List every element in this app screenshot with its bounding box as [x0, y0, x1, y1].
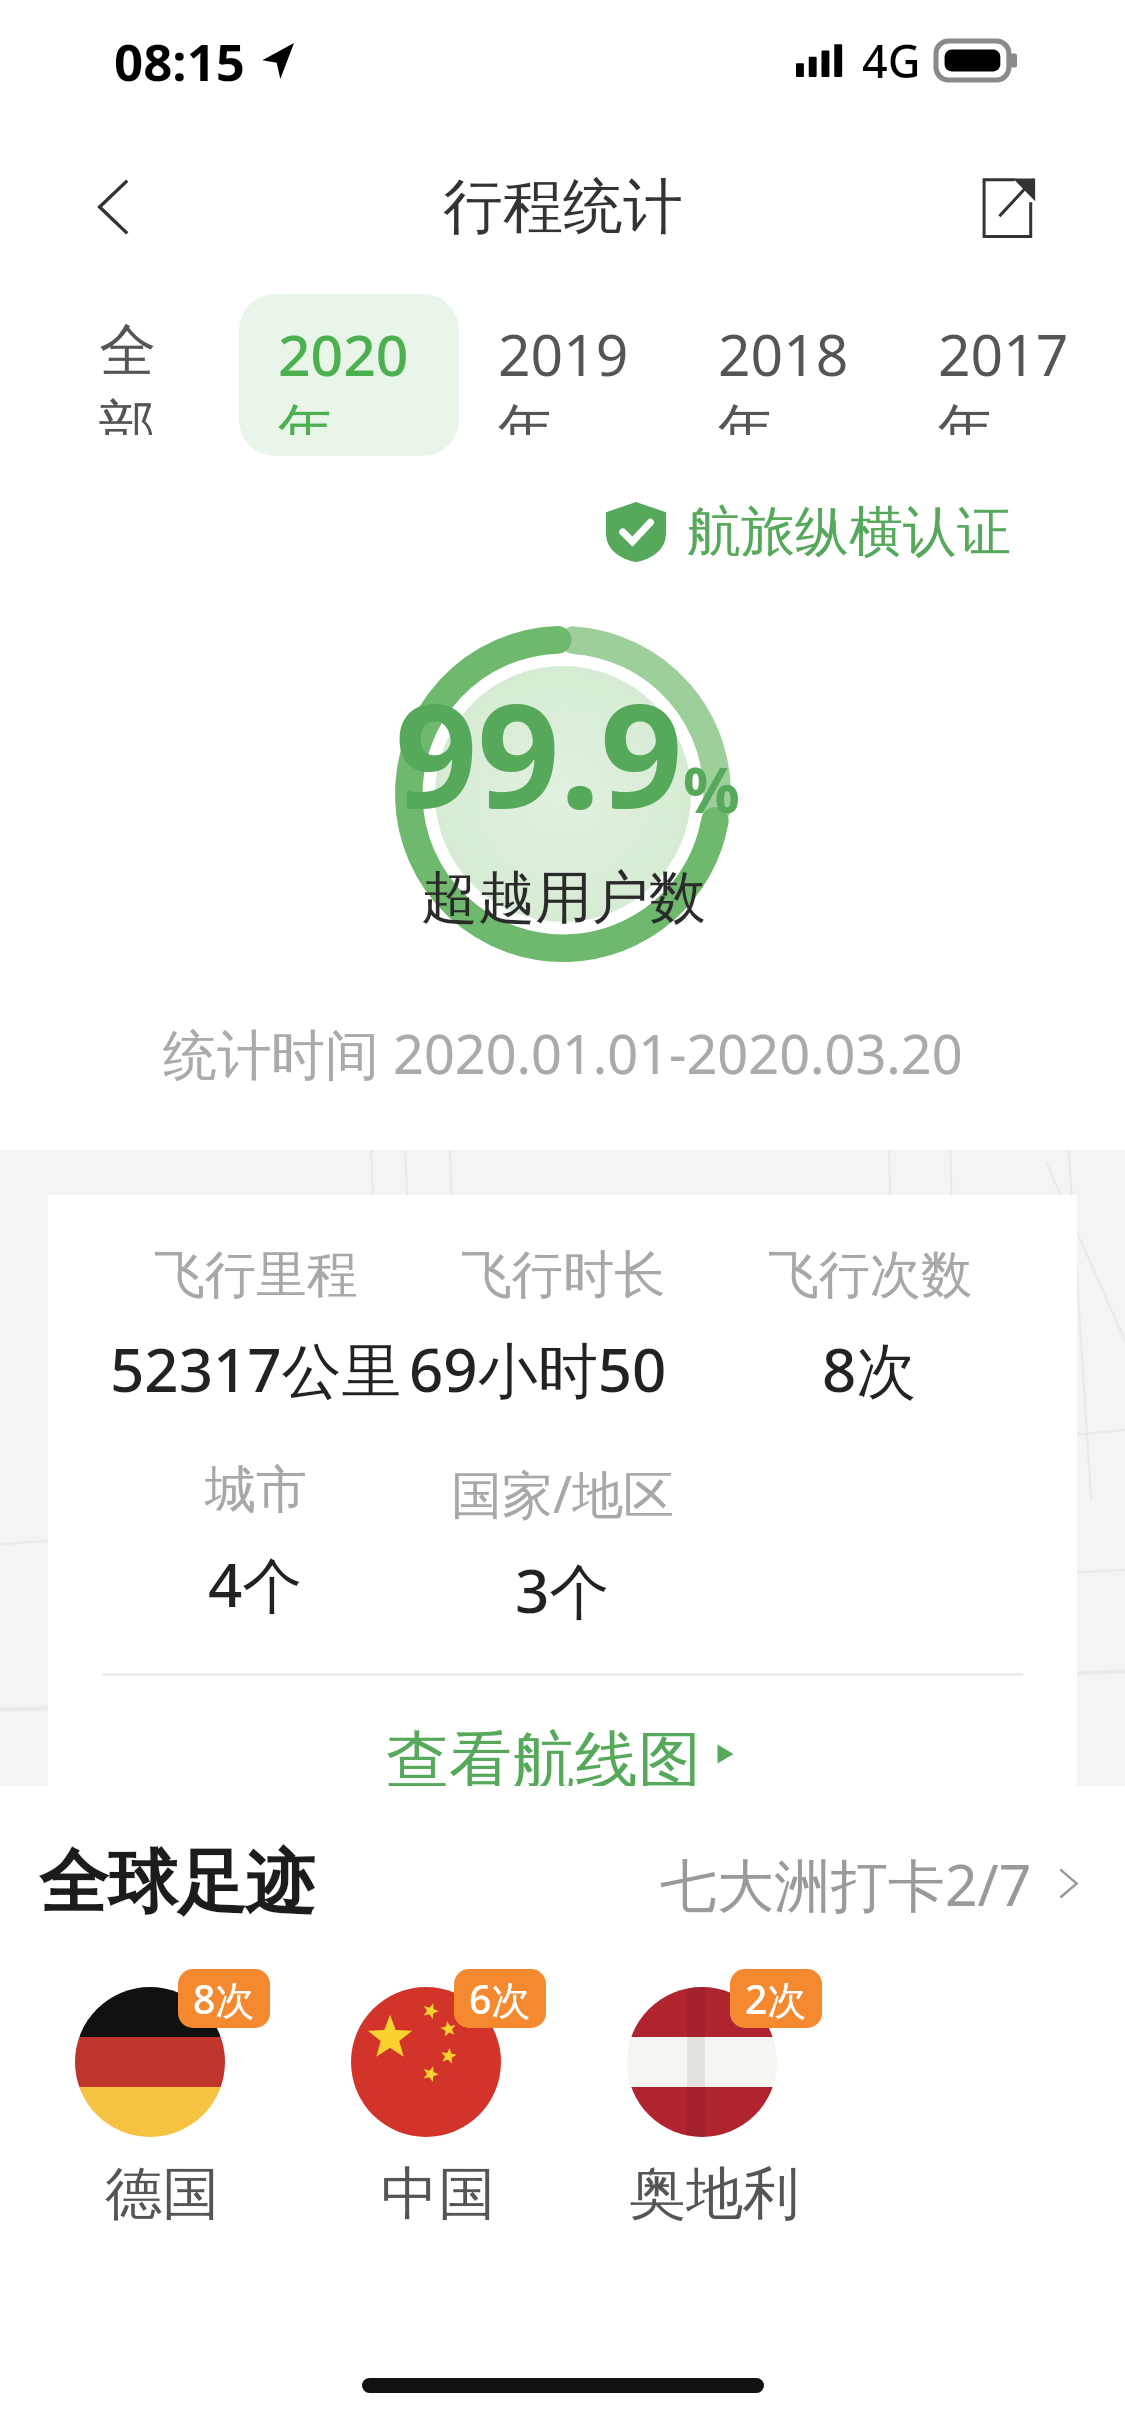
button[interactable]: 2017年: [899, 294, 1119, 456]
button[interactable]: 2020年: [239, 294, 459, 456]
staticText: 2020年: [278, 315, 420, 435]
button[interactable]: 全部: [60, 294, 239, 456]
button[interactable]: 查看航线图: [102, 1676, 1023, 1831]
staticText: 七大洲打卡2/7: [660, 1845, 1032, 1923]
staticText: 飞行里程: [154, 1243, 358, 1307]
staticText: 超越用户数: [421, 862, 706, 934]
button[interactable]: 全球足迹: [39, 1840, 1086, 1927]
staticText: 6次: [469, 1972, 531, 2025]
staticText: 2019年: [498, 315, 640, 435]
staticText: 4G: [862, 30, 921, 91]
staticText: 3个: [515, 1549, 610, 1631]
button[interactable]: Back: [36, 129, 192, 285]
staticText: 行程统计: [443, 169, 683, 245]
staticText: 全部: [99, 315, 200, 435]
button[interactable]: 2018年: [679, 294, 899, 456]
staticText: 统计时间 2020.01.01-2020.03.20: [163, 1016, 963, 1090]
staticText: 查看航线图: [386, 1721, 701, 1786]
staticText: 德国: [105, 2158, 219, 2230]
staticText: 2017年: [938, 315, 1080, 435]
staticText: 52317公里: [110, 1328, 402, 1410]
staticText: 城市: [205, 1458, 307, 1522]
staticText: 2次: [745, 1972, 807, 2025]
staticText: %: [683, 746, 731, 832]
staticText: 69小时50分钟: [409, 1328, 716, 1410]
staticText: 航旅纵横认证: [687, 498, 1011, 566]
staticText: 飞行次数: [768, 1243, 972, 1307]
staticText: 4个: [208, 1543, 303, 1625]
staticText: 国家/地区: [451, 1458, 674, 1528]
staticText: 99.9: [395, 654, 683, 850]
staticText: 8次: [822, 1328, 917, 1410]
staticText: 飞行时长: [461, 1243, 665, 1307]
staticText: 中国: [381, 2158, 495, 2230]
staticText: 08:15: [114, 26, 246, 95]
button[interactable]: 2次: [576, 1969, 852, 2230]
staticText: 奥地利: [629, 2158, 800, 2230]
button[interactable]: 8次: [24, 1969, 300, 2230]
staticText: 全球足迹: [39, 1840, 315, 1927]
button[interactable]: 6次: [300, 1969, 576, 2230]
staticText: 2018年: [718, 315, 860, 435]
button[interactable]: Share: [927, 129, 1083, 285]
button[interactable]: 2019年: [459, 294, 679, 456]
staticText: 8次: [193, 1972, 255, 2025]
